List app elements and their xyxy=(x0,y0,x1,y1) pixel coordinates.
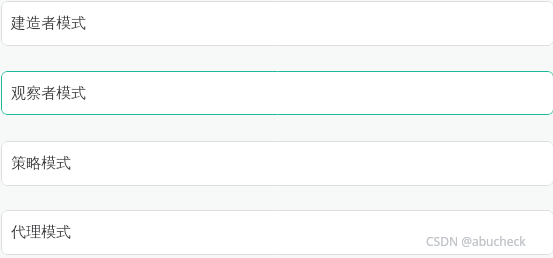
button[interactable]: 观察者模式 xyxy=(1,71,553,115)
button[interactable]: 策略模式 xyxy=(1,141,553,186)
staticText: 观察者模式 xyxy=(11,84,86,103)
staticText: 建造者模式 xyxy=(11,14,86,33)
staticText: CSDN @abucheck xyxy=(426,233,526,249)
staticText: 策略模式 xyxy=(11,154,71,173)
button[interactable]: 建造者模式 xyxy=(1,1,553,46)
staticText: 代理模式 xyxy=(11,223,71,242)
button[interactable]: 代理模式 xyxy=(1,210,553,255)
